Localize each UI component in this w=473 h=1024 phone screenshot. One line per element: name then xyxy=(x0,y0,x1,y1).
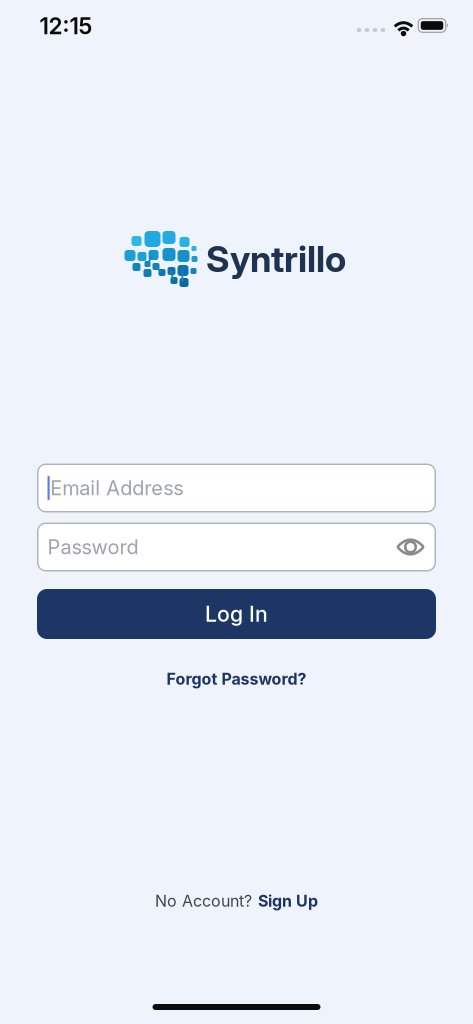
button[interactable]: Forgot Password? xyxy=(166,670,306,688)
button[interactable]: Sign Up xyxy=(258,892,318,910)
staticText: Sign Up xyxy=(258,892,318,910)
staticText: 12:15 xyxy=(39,13,92,39)
button[interactable]: Email Address xyxy=(37,463,436,512)
button[interactable]: Show Password xyxy=(396,537,425,557)
staticText: Forgot Password? xyxy=(166,670,306,688)
staticText: Log In xyxy=(205,601,268,627)
staticText: Syntrillo xyxy=(206,238,346,280)
staticText: No Account? xyxy=(155,892,252,910)
staticText: Email Address xyxy=(50,476,183,500)
button[interactable]: Log In xyxy=(37,589,436,639)
button[interactable]: Password xyxy=(37,522,436,571)
staticText: Password xyxy=(47,535,138,559)
